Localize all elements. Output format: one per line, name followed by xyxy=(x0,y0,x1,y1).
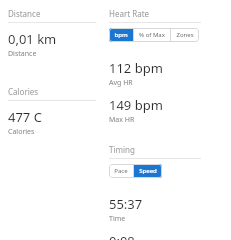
staticText: Max HR xyxy=(109,115,135,125)
staticText: bpm xyxy=(114,31,128,39)
staticText: % of Max xyxy=(139,31,165,39)
staticText: Time xyxy=(109,214,126,224)
button[interactable]: Zones xyxy=(171,28,199,42)
button[interactable]: % of Max xyxy=(134,28,170,42)
staticText: Timing xyxy=(109,144,135,155)
staticText: Calories xyxy=(8,127,35,137)
staticText: Distance xyxy=(8,49,37,59)
button[interactable]: Pace xyxy=(109,164,133,178)
staticText: Heart Rate xyxy=(109,8,150,19)
staticText: 477 C xyxy=(8,108,42,126)
staticText: 0,01 km xyxy=(8,30,57,48)
button[interactable]: bpm xyxy=(109,28,133,42)
staticText: 55:37 xyxy=(109,195,143,213)
staticText: Avg HR xyxy=(109,78,133,88)
staticText: Distance xyxy=(8,8,41,19)
staticText: 112 bpm xyxy=(109,59,163,77)
staticText: Calories xyxy=(8,86,39,97)
staticText: 0:08 xyxy=(109,232,135,240)
staticText: Speed xyxy=(139,167,157,175)
button[interactable]: Speed xyxy=(134,164,162,178)
staticText: 149 bpm xyxy=(109,96,163,114)
staticText: Zones xyxy=(176,31,194,39)
staticText: Pace xyxy=(114,167,128,175)
